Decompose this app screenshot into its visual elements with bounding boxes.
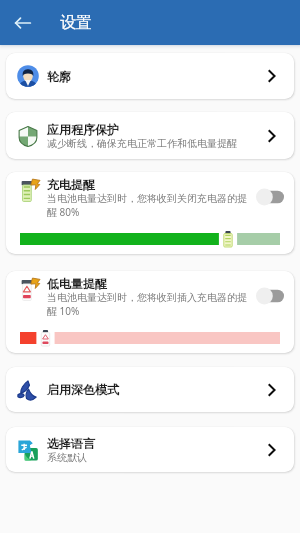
button[interactable]: Toggle [256, 188, 284, 206]
button[interactable]: Toggle [256, 287, 284, 305]
staticText: 选择语言 [47, 436, 95, 451]
button[interactable]: 轮廓 [6, 53, 294, 99]
staticText: 低电量提醒 [47, 276, 107, 291]
staticText: 轮廓 [47, 69, 71, 84]
staticText: 设置 [60, 13, 92, 33]
staticText: 减少断线，确保充电正常工作和低电量提醒 [47, 137, 237, 150]
button[interactable]: Back [9, 9, 37, 37]
staticText: 应用程序保护 [47, 122, 119, 137]
button[interactable]: 选择语言 [6, 427, 294, 472]
staticText: 充电提醒 [47, 177, 95, 192]
staticText: 系统默认 [47, 451, 87, 464]
button[interactable]: 低电量提醒 [6, 271, 294, 353]
staticText: 启用深色模式 [47, 382, 119, 397]
button[interactable]: 充电提醒 [6, 172, 294, 254]
staticText: 当电池电量达到时，您将收到插入充电器的提醒 10% [47, 291, 247, 318]
button[interactable]: 启用深色模式 [6, 367, 294, 412]
staticText: 当电池电量达到时，您将收到关闭充电器的提醒 80% [47, 192, 247, 219]
button[interactable]: 应用程序保护 [6, 112, 294, 159]
